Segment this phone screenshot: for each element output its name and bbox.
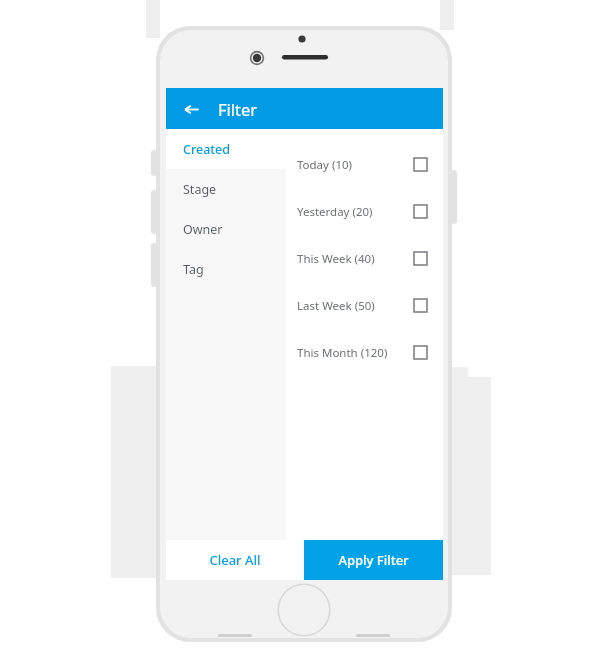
staticText: This Month (120): [297, 345, 414, 361]
staticText: This Week (40): [297, 251, 414, 267]
staticText: Last Week (50): [297, 298, 414, 314]
button[interactable]: Apply Filter: [304, 540, 443, 580]
button[interactable]: Created: [166, 129, 286, 169]
staticText: Filter: [218, 98, 258, 120]
button[interactable]: Last Week (50): [286, 282, 443, 329]
staticText: Owner: [183, 221, 223, 238]
button[interactable]: Owner: [166, 209, 286, 249]
button[interactable]: Yesterday (20): [286, 188, 443, 235]
button[interactable]: This Month (120): [286, 329, 443, 376]
button[interactable]: This Week (40): [286, 235, 443, 282]
staticText: Tag: [183, 261, 204, 278]
staticText: Clear All: [209, 551, 261, 569]
staticText: Stage: [183, 181, 217, 198]
staticText: Today (10): [297, 157, 414, 173]
button[interactable]: Stage: [166, 169, 286, 209]
staticText: Apply Filter: [338, 551, 409, 569]
button[interactable]: Clear All: [166, 540, 304, 580]
button[interactable]: Today (10): [286, 141, 443, 188]
staticText: Created: [183, 141, 231, 158]
staticText: Yesterday (20): [297, 204, 414, 220]
button[interactable]: Tag: [166, 249, 286, 289]
button[interactable]: Back: [176, 94, 206, 124]
